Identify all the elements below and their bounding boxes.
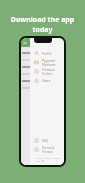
staticText: v1.0 • 2024 • Made with ♥ — [36, 156, 64, 162]
staticText: Download the app today — [0, 15, 85, 35]
staticText: Profile — [42, 52, 52, 56]
button[interactable]: FAQ — [30, 136, 64, 145]
button[interactable]: Share — [30, 76, 64, 85]
button[interactable]: Menu — [23, 41, 27, 45]
button[interactable]: Payment Methods — [30, 58, 64, 67]
button[interactable]: Previous Orders — [30, 67, 64, 76]
staticText: Share — [42, 79, 51, 83]
button[interactable]: Terms & Privacy — [30, 145, 64, 154]
staticText: Terms & Privacy — [42, 146, 64, 154]
staticText: Payment Methods — [42, 59, 64, 67]
staticText: FAQ — [42, 139, 49, 143]
staticText: Previous Orders — [42, 68, 64, 76]
button[interactable]: Profile — [30, 49, 64, 58]
